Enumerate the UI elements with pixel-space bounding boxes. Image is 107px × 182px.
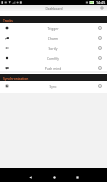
button[interactable]: Sync	[0, 81, 107, 91]
button[interactable]: Home	[48, 172, 60, 182]
staticText: Trigger	[13, 26, 93, 30]
other: Info	[93, 63, 107, 73]
button[interactable]: Charm	[0, 33, 107, 43]
other: Info	[93, 23, 107, 33]
staticText: Comfify	[13, 56, 93, 60]
staticText: Sortly	[13, 46, 93, 50]
other: Info	[93, 43, 107, 53]
button[interactable]: Back	[24, 172, 36, 182]
staticText: Dashboard	[45, 6, 63, 10]
button[interactable]: Trigger	[0, 23, 107, 33]
other: Info	[93, 53, 107, 63]
button[interactable]: Recent apps	[71, 172, 83, 182]
staticText: Charm	[13, 36, 93, 40]
staticText: Tracks	[3, 18, 13, 22]
button[interactable]: Push mind	[0, 63, 107, 73]
staticText: Push mind	[13, 66, 93, 70]
other: Info	[93, 33, 107, 43]
button[interactable]: Comfify	[0, 53, 107, 63]
staticText: Synchronization	[3, 76, 29, 80]
staticText: Sync	[13, 84, 93, 88]
other: Info	[93, 81, 107, 91]
button[interactable]: Sortly	[0, 43, 107, 53]
staticText: 14:45	[96, 0, 106, 5]
button[interactable]: More options	[97, 5, 107, 11]
